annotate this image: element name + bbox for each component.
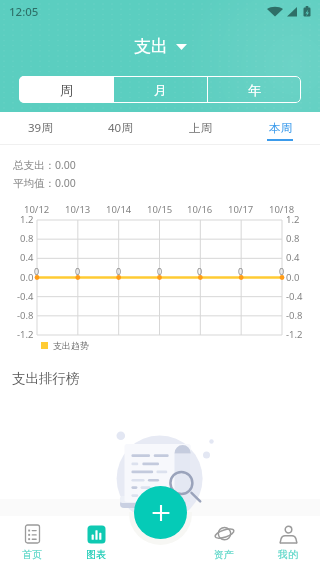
staticText: -0.8: [17, 309, 34, 321]
staticText: 0: [197, 265, 203, 276]
button[interactable]: 40周: [80, 112, 160, 144]
button[interactable]: 支出: [134, 36, 187, 57]
button[interactable]: 周: [19, 76, 113, 103]
staticText: -1.2: [286, 328, 303, 340]
staticText: -0.4: [286, 290, 303, 302]
staticText: 0.4: [20, 251, 34, 263]
staticText: 周: [60, 82, 73, 98]
button[interactable]: 图表: [64, 516, 128, 568]
button[interactable]: 首页: [0, 516, 64, 568]
staticText: 10/17: [228, 203, 254, 215]
staticText: 0.8: [286, 232, 300, 244]
staticText: 0: [75, 265, 81, 276]
staticText: 40周: [108, 120, 133, 136]
staticText: 年: [248, 82, 261, 98]
staticText: 0: [279, 265, 285, 276]
staticText: 10/18: [269, 203, 295, 215]
button[interactable]: 资产: [192, 516, 256, 568]
staticText: -1.2: [17, 328, 34, 340]
staticText: 10/14: [106, 203, 132, 215]
staticText: 总支出：0.00: [13, 158, 76, 172]
staticText: 12:05: [9, 4, 39, 20]
button[interactable]: 上周: [160, 112, 240, 144]
button[interactable]: 月: [114, 76, 207, 103]
staticText: 资产: [214, 548, 234, 561]
button[interactable]: 39周: [0, 112, 80, 144]
staticText: 平均值：0.00: [13, 176, 76, 190]
staticText: 10/16: [187, 203, 213, 215]
staticText: 首页: [22, 548, 42, 561]
staticText: -0.8: [286, 309, 303, 321]
staticText: 图表: [86, 548, 106, 561]
staticText: 0.0: [286, 271, 300, 283]
staticText: 10/12: [24, 203, 50, 215]
staticText: 0.4: [286, 251, 300, 263]
staticText: 0: [157, 265, 163, 276]
staticText: 我的: [278, 548, 298, 561]
staticText: 月: [154, 82, 167, 98]
staticText: 10/15: [147, 203, 173, 215]
staticText: 0: [116, 265, 122, 276]
button[interactable]: 年: [208, 76, 301, 103]
staticText: 本周: [269, 121, 292, 135]
button[interactable]: Add expense: [134, 486, 187, 539]
button[interactable]: 我的: [256, 516, 320, 568]
staticText: 支出排行榜: [12, 370, 80, 387]
staticText: 上周: [189, 121, 212, 135]
staticText: 0.8: [20, 232, 34, 244]
button[interactable]: 本周: [240, 112, 320, 144]
staticText: 0.0: [20, 271, 34, 283]
staticText: 10/13: [65, 203, 91, 215]
staticText: 1.2: [20, 213, 34, 225]
staticText: 0: [34, 265, 40, 276]
staticText: 0: [238, 265, 244, 276]
staticText: 支出趋势: [53, 340, 89, 351]
staticText: 1.2: [286, 213, 300, 225]
staticText: 39周: [28, 120, 53, 136]
staticText: -0.4: [17, 290, 34, 302]
staticText: 支出: [134, 36, 168, 57]
